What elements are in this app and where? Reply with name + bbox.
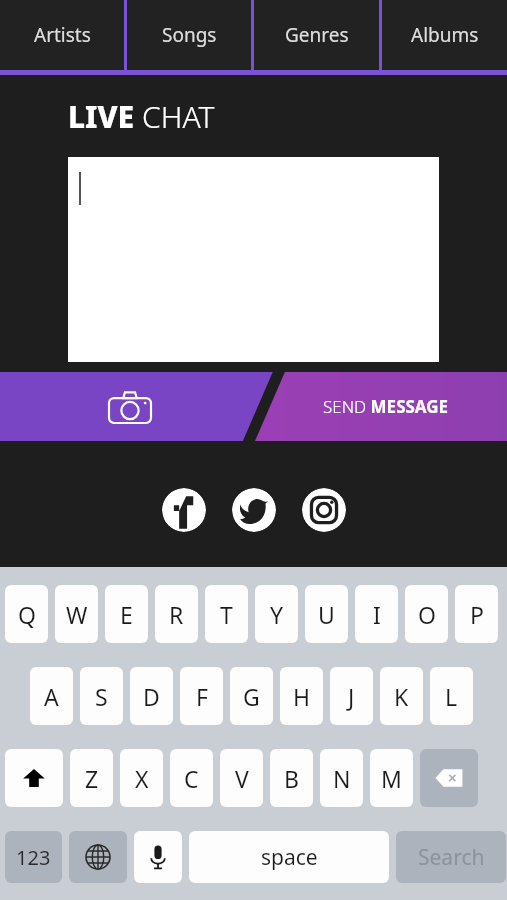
button[interactable]: key bbox=[134, 831, 182, 883]
staticText: Q bbox=[18, 599, 36, 630]
button[interactable]: R bbox=[155, 585, 198, 643]
staticText: Songs bbox=[162, 22, 217, 48]
button[interactable]: C bbox=[170, 749, 213, 807]
staticText: L bbox=[445, 681, 458, 712]
button[interactable]: Instagram bbox=[302, 488, 346, 532]
button[interactable]: W bbox=[55, 585, 98, 643]
staticText: Z bbox=[85, 763, 99, 794]
staticText: F bbox=[196, 681, 208, 712]
staticText: space bbox=[261, 843, 318, 872]
button[interactable]: space bbox=[189, 831, 389, 883]
button[interactable]: key bbox=[420, 749, 478, 807]
staticText: W bbox=[66, 599, 88, 630]
staticText: 123 bbox=[16, 844, 51, 871]
button[interactable]: Genres bbox=[254, 0, 379, 70]
button[interactable]: Artists bbox=[0, 0, 124, 70]
button[interactable]: N bbox=[320, 749, 363, 807]
button[interactable]: 123 bbox=[5, 831, 62, 883]
button[interactable]: Attach photo bbox=[100, 372, 160, 441]
staticText: Genres bbox=[285, 22, 349, 48]
staticText: I bbox=[373, 599, 381, 630]
button[interactable]: T bbox=[205, 585, 248, 643]
button[interactable]: I bbox=[355, 585, 398, 643]
button[interactable]: SEND MESSAGE bbox=[265, 372, 507, 441]
button[interactable]: O bbox=[405, 585, 448, 643]
staticText: LIVE CHAT bbox=[68, 96, 215, 137]
staticText: U bbox=[318, 599, 335, 630]
button[interactable]: H bbox=[280, 667, 323, 725]
button[interactable]: S bbox=[80, 667, 123, 725]
staticText: Search bbox=[418, 843, 485, 872]
staticText: T bbox=[220, 599, 233, 630]
button[interactable]: D bbox=[130, 667, 173, 725]
staticText: R bbox=[169, 599, 184, 630]
button[interactable]: G bbox=[230, 667, 273, 725]
button[interactable]: U bbox=[305, 585, 348, 643]
button[interactable]: key bbox=[5, 749, 63, 807]
staticText: Y bbox=[270, 599, 284, 630]
staticText: A bbox=[44, 681, 59, 712]
button[interactable]: Y bbox=[255, 585, 298, 643]
button[interactable]: L bbox=[430, 667, 473, 725]
button[interactable]: Twitter bbox=[232, 488, 276, 532]
staticText: O bbox=[418, 599, 436, 630]
staticText: M bbox=[381, 763, 402, 794]
button[interactable]: Search bbox=[396, 831, 506, 883]
button[interactable]: A bbox=[30, 667, 73, 725]
staticText: SEND MESSAGE bbox=[323, 395, 449, 418]
staticText: D bbox=[143, 681, 160, 712]
button[interactable]: V bbox=[220, 749, 263, 807]
button[interactable]: F bbox=[180, 667, 223, 725]
staticText: B bbox=[284, 763, 299, 794]
button[interactable]: Albums bbox=[382, 0, 507, 70]
staticText: K bbox=[394, 681, 409, 712]
staticText: E bbox=[120, 599, 133, 630]
staticText: P bbox=[470, 599, 484, 630]
button[interactable]: J bbox=[330, 667, 373, 725]
staticText: N bbox=[333, 763, 351, 794]
button[interactable]: Z bbox=[70, 749, 113, 807]
staticText: Artists bbox=[34, 22, 91, 48]
button[interactable]: Facebook bbox=[162, 488, 206, 532]
button[interactable] bbox=[68, 157, 439, 362]
button[interactable]: B bbox=[270, 749, 313, 807]
button[interactable]: K bbox=[380, 667, 423, 725]
button[interactable]: M bbox=[370, 749, 413, 807]
button[interactable]: key bbox=[69, 831, 127, 883]
staticText: J bbox=[348, 681, 355, 712]
button[interactable]: E bbox=[105, 585, 148, 643]
staticText: S bbox=[95, 681, 108, 712]
button[interactable]: P bbox=[455, 585, 498, 643]
staticText: G bbox=[243, 681, 260, 712]
staticText: Albums bbox=[411, 22, 479, 48]
staticText: X bbox=[135, 763, 149, 794]
staticText: V bbox=[235, 763, 249, 794]
staticText: H bbox=[293, 681, 311, 712]
button[interactable]: Q bbox=[5, 585, 48, 643]
button[interactable]: X bbox=[120, 749, 163, 807]
staticText: C bbox=[184, 763, 199, 794]
button[interactable]: Songs bbox=[127, 0, 251, 70]
